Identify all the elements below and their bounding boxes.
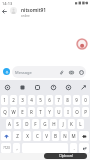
staticText: 5	[39, 97, 42, 103]
button[interactable]: P	[82, 107, 89, 117]
button[interactable]: R	[28, 107, 35, 117]
staticText: 4	[30, 97, 33, 103]
staticText: O	[75, 109, 79, 115]
staticText: 3	[21, 97, 24, 103]
button[interactable]: ?123	[1, 143, 11, 153]
button[interactable]: O	[73, 107, 80, 117]
button[interactable]: 9	[73, 95, 80, 105]
staticText: Clipboard	[59, 154, 73, 158]
staticText: 7	[57, 97, 60, 103]
button[interactable]: J	[59, 119, 66, 129]
staticText: D	[25, 121, 29, 127]
button[interactable]: Back	[0, 7, 9, 16]
button[interactable]: E	[19, 107, 26, 117]
button[interactable]: Contact avatar	[10, 7, 17, 14]
button[interactable]: Keyboard tool 3	[33, 83, 41, 91]
staticText: 8	[66, 97, 69, 103]
staticText: L	[79, 121, 82, 127]
button[interactable]: 5	[37, 95, 44, 105]
button[interactable]: Z	[13, 131, 21, 141]
button[interactable]: 6	[46, 95, 53, 105]
button[interactable]: A	[6, 119, 12, 129]
button[interactable]: M	[70, 131, 77, 141]
staticText: H	[52, 121, 56, 127]
staticText: M	[71, 133, 76, 139]
button[interactable]: Clipboard	[44, 153, 87, 159]
button[interactable]: Keyboard tool 6	[79, 83, 87, 91]
button[interactable]: ,	[13, 143, 20, 153]
staticText: W	[11, 109, 16, 115]
staticText: Y	[48, 109, 51, 115]
staticText: Message	[15, 70, 32, 75]
button[interactable]: Y	[46, 107, 53, 117]
button[interactable]: V	[43, 131, 50, 141]
button[interactable]: X	[23, 131, 31, 141]
staticText: N	[63, 133, 67, 139]
button[interactable]: G	[41, 119, 48, 129]
staticText: G	[43, 121, 47, 127]
staticText: ,	[16, 145, 18, 151]
button[interactable]: S	[14, 119, 21, 129]
staticText: Z	[16, 133, 19, 139]
staticText: 6	[48, 97, 51, 103]
staticText: K	[70, 121, 73, 127]
button[interactable]: 1	[1, 95, 8, 105]
staticText: R	[30, 109, 33, 115]
button[interactable]: F	[32, 119, 39, 129]
button[interactable]: Enter	[79, 143, 89, 153]
button[interactable]: 4	[28, 95, 35, 105]
button[interactable]: U	[55, 107, 62, 117]
staticText: P	[84, 109, 87, 115]
staticText: T	[39, 109, 42, 115]
staticText: 2	[12, 97, 15, 103]
button[interactable]: Keyboard tool 1	[3, 83, 11, 91]
staticText: F	[34, 121, 37, 127]
staticText: S	[16, 121, 19, 127]
button[interactable]: .	[70, 143, 77, 153]
button[interactable]: Camera	[68, 69, 75, 76]
staticText: U	[57, 109, 61, 115]
staticText: I	[67, 109, 69, 115]
staticText: E	[21, 109, 24, 115]
button[interactable]: Shift	[1, 131, 11, 141]
staticText: 1	[3, 97, 6, 103]
staticText: ?123	[3, 146, 10, 150]
button[interactable]: L	[77, 119, 84, 129]
staticText: nitsomit91	[21, 7, 47, 14]
button[interactable]: T	[37, 107, 44, 117]
button[interactable]: 2	[10, 95, 17, 105]
button[interactable]: 0	[82, 95, 89, 105]
button[interactable]: D	[23, 119, 30, 129]
staticText: A	[8, 121, 11, 127]
button[interactable]: 7	[55, 95, 62, 105]
button[interactable]: Sticker	[78, 69, 85, 76]
button[interactable]: I	[64, 107, 71, 117]
button[interactable]: Voice message	[3, 68, 10, 75]
button[interactable]: Attach	[58, 69, 65, 76]
staticText: Q	[3, 109, 7, 115]
button[interactable]: Q	[1, 107, 8, 117]
button[interactable]: H	[50, 119, 57, 129]
button[interactable]: Keyboard tool 2	[18, 83, 26, 91]
button[interactable]: K	[68, 119, 75, 129]
staticText: J	[62, 121, 64, 127]
staticText: .	[73, 145, 75, 151]
button[interactable]: W	[10, 107, 17, 117]
staticText: C	[36, 133, 39, 139]
button[interactable]: 3	[19, 95, 26, 105]
staticText: 9	[75, 97, 78, 103]
button[interactable]: 8	[64, 95, 71, 105]
button[interactable]: B	[52, 131, 59, 141]
button[interactable]: C	[33, 131, 41, 141]
button[interactable]: Backspace	[79, 131, 89, 141]
button[interactable]: Keyboard tool 5	[64, 83, 72, 91]
button[interactable]: Message	[12, 66, 86, 78]
button[interactable]: Keyboard tool 4	[49, 83, 57, 91]
staticText: B	[54, 133, 57, 139]
staticText: X	[26, 133, 29, 139]
staticText: 0	[84, 97, 87, 103]
staticText: online	[21, 14, 30, 18]
staticText: V	[45, 133, 48, 139]
button[interactable]: N	[61, 131, 68, 141]
